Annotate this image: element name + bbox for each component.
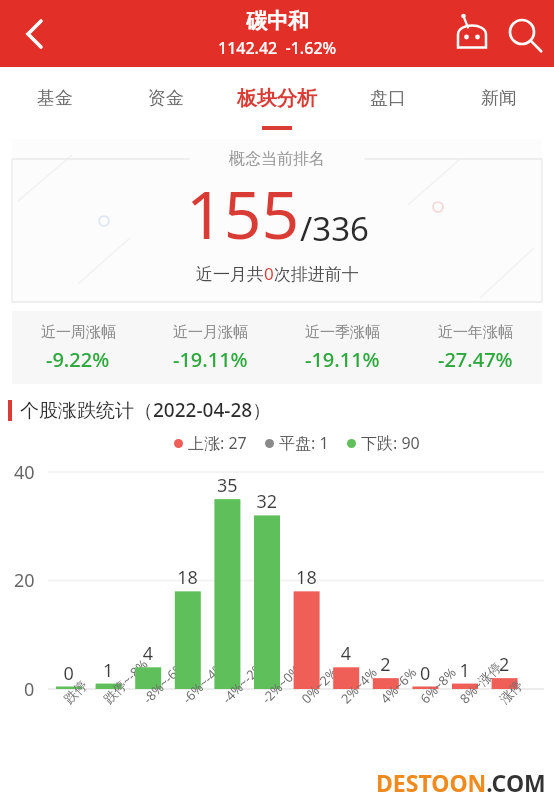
button[interactable]: Back [10, 10, 58, 58]
staticText: 盘口 [370, 87, 406, 110]
button[interactable]: 平盘: 1 [265, 432, 329, 454]
button[interactable]: 近一年涨幅 [409, 311, 542, 384]
staticText: 个股涨跌统计（2022-04-28） [20, 397, 272, 423]
button[interactable]: 板块分析 [221, 67, 332, 130]
button[interactable]: 新闻 [443, 67, 554, 130]
button[interactable]: 近一季涨幅 [276, 311, 409, 384]
staticText: 概念当前排名 [229, 149, 325, 169]
staticText: -9.22% [46, 346, 110, 373]
staticText: 基金 [37, 87, 73, 110]
staticText: 平盘: 1 [279, 432, 329, 454]
button[interactable]: 资金 [110, 67, 221, 130]
staticText: 碳中和 [246, 8, 309, 34]
staticText: 下跌: 90 [361, 432, 420, 454]
button[interactable]: 盘口 [332, 67, 443, 130]
staticText: 近一周涨幅 [41, 323, 116, 342]
button[interactable]: AI assistant [448, 10, 496, 58]
staticText: -19.11% [173, 346, 248, 373]
staticText: 上涨: 27 [188, 432, 247, 454]
staticText: 板块分析 [237, 86, 317, 111]
staticText: 新闻 [481, 87, 517, 110]
button[interactable]: 基金 [0, 67, 110, 130]
button[interactable]: 上涨: 27 [174, 432, 247, 454]
button[interactable]: Search [500, 10, 548, 58]
staticText: /336 [300, 206, 369, 251]
staticText: 近一季涨幅 [305, 323, 380, 342]
staticText: -27.47% [438, 346, 513, 373]
staticText: 近一年涨幅 [438, 323, 513, 342]
staticText: 近一月涨幅 [173, 323, 248, 342]
button[interactable]: 近一周涨幅 [12, 311, 144, 384]
button[interactable]: 下跌: 90 [347, 432, 420, 454]
staticText: 1142.42 -1.62% [218, 37, 337, 59]
button[interactable]: 近一月涨幅 [144, 311, 276, 384]
staticText: 资金 [148, 87, 184, 110]
staticText: 近一月共0次排进前十 [196, 262, 359, 285]
staticText: -19.11% [305, 346, 380, 373]
staticText: 155 [186, 168, 300, 258]
